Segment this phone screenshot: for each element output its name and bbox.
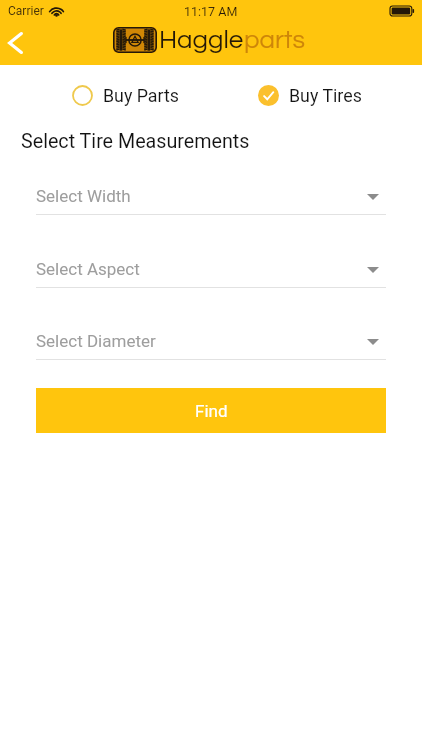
staticText: Buy Tires <box>289 85 362 106</box>
staticText: parts <box>244 27 305 54</box>
button[interactable]: Buy Parts <box>72 85 180 106</box>
button[interactable]: Select Width <box>36 182 386 215</box>
staticText: Select Diameter <box>36 331 156 351</box>
staticText: Select Tire Measurements <box>21 130 250 153</box>
button[interactable]: Select Diameter <box>36 327 386 360</box>
staticText: Buy Parts <box>103 85 180 106</box>
staticText: Find <box>195 401 228 421</box>
button[interactable]: Find <box>36 388 386 433</box>
staticText: Carrier <box>8 4 44 18</box>
button[interactable]: Select Aspect <box>36 255 386 288</box>
staticText: 11:17 AM <box>184 4 238 19</box>
button[interactable]: Buy Tires <box>258 85 362 106</box>
staticText: Select Width <box>36 186 131 206</box>
button[interactable]: Back <box>0 24 34 62</box>
staticText: Select Aspect <box>36 259 140 279</box>
button[interactable]: Haggleparts home <box>110 24 310 56</box>
staticText: Haggle <box>159 27 244 54</box>
